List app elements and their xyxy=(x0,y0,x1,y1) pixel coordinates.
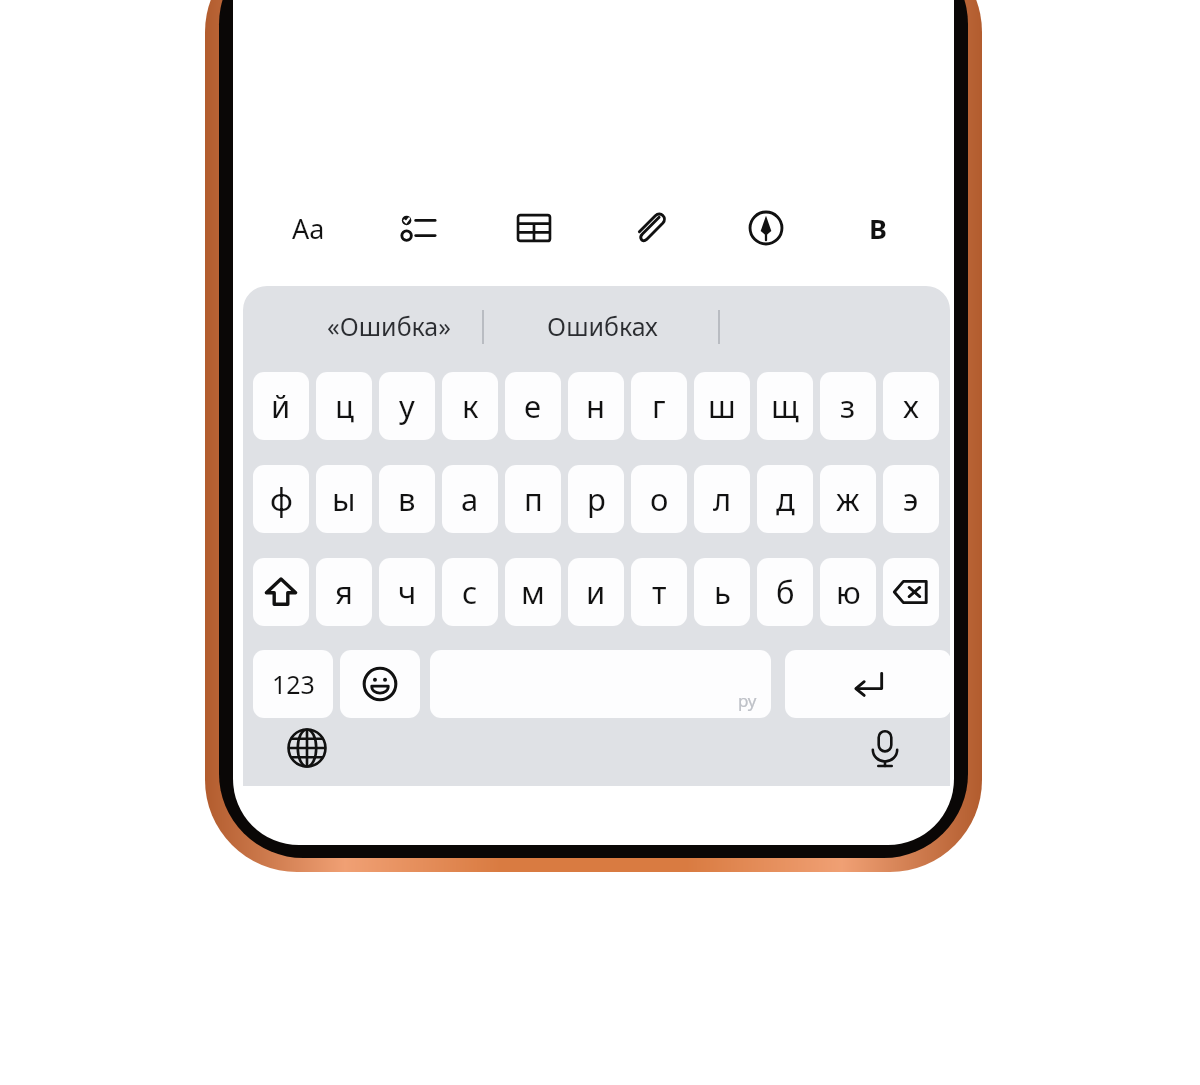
staticText: р xyxy=(587,478,606,520)
button[interactable]: Ошибках xyxy=(487,286,718,366)
button[interactable]: и xyxy=(568,558,624,626)
staticText: г xyxy=(652,385,666,427)
button[interactable]: ж xyxy=(820,465,876,533)
button[interactable]: а xyxy=(442,465,498,533)
button[interactable]: Space xyxy=(430,650,771,718)
staticText: е xyxy=(524,385,542,427)
staticText: ру xyxy=(738,689,757,712)
staticText: B xyxy=(869,210,887,247)
button[interactable]: Enter xyxy=(785,650,950,718)
staticText: м xyxy=(521,571,545,613)
staticText: 123 xyxy=(272,667,315,701)
button[interactable]: е xyxy=(505,372,561,440)
button[interactable]: Emoji xyxy=(340,650,420,718)
staticText: а xyxy=(461,478,479,520)
staticText: и xyxy=(586,571,606,613)
button[interactable]: ю xyxy=(820,558,876,626)
staticText: д xyxy=(776,478,795,520)
button[interactable]: у xyxy=(379,372,435,440)
staticText: ы xyxy=(332,478,356,520)
staticText: я xyxy=(335,571,353,613)
button[interactable]: р xyxy=(568,465,624,533)
button[interactable]: к xyxy=(442,372,498,440)
staticText: ц xyxy=(335,385,354,427)
staticText: л xyxy=(713,478,732,520)
staticText: у xyxy=(399,385,415,427)
staticText: х xyxy=(903,385,919,427)
button[interactable]: г xyxy=(631,372,687,440)
button[interactable]: ш xyxy=(694,372,750,440)
staticText: ь xyxy=(714,571,731,613)
button[interactable]: 123 xyxy=(253,650,333,718)
button[interactable]: с xyxy=(442,558,498,626)
button[interactable]: Bold xyxy=(854,204,902,252)
button[interactable]: ц xyxy=(316,372,372,440)
staticText: «Ошибка» xyxy=(327,309,451,343)
button[interactable]: щ xyxy=(757,372,813,440)
staticText: о xyxy=(650,478,669,520)
button[interactable]: Shift xyxy=(253,558,309,626)
button[interactable]: Attach file xyxy=(626,204,674,252)
staticText: н xyxy=(586,385,606,427)
staticText: й xyxy=(271,385,291,427)
button[interactable]: Checklist xyxy=(394,204,442,252)
button[interactable]: ч xyxy=(379,558,435,626)
staticText: э xyxy=(903,478,919,520)
button[interactable]: б xyxy=(757,558,813,626)
staticText: з xyxy=(840,385,856,427)
button[interactable]: Draw xyxy=(742,204,790,252)
button[interactable]: з xyxy=(820,372,876,440)
button[interactable]: Text format xyxy=(284,204,332,252)
button[interactable]: Change language xyxy=(279,720,335,776)
staticText: б xyxy=(776,571,795,613)
button[interactable]: п xyxy=(505,465,561,533)
button[interactable]: ь xyxy=(694,558,750,626)
button[interactable]: о xyxy=(631,465,687,533)
staticText: Aa xyxy=(292,210,325,247)
button[interactable]: н xyxy=(568,372,624,440)
button[interactable]: ф xyxy=(253,465,309,533)
button[interactable]: в xyxy=(379,465,435,533)
staticText: ш xyxy=(708,385,736,427)
button[interactable]: д xyxy=(757,465,813,533)
staticText: с xyxy=(462,571,478,613)
staticText: п xyxy=(524,478,543,520)
button[interactable]: т xyxy=(631,558,687,626)
staticText: ф xyxy=(270,478,293,520)
button[interactable]: я xyxy=(316,558,372,626)
staticText: Ошибках xyxy=(547,309,658,343)
button[interactable]: Backspace xyxy=(883,558,939,626)
staticText: ч xyxy=(398,571,417,613)
button[interactable]: Table xyxy=(510,204,558,252)
staticText: т xyxy=(652,571,667,613)
staticText: в xyxy=(398,478,416,520)
staticText: ж xyxy=(836,478,860,520)
button[interactable]: ы xyxy=(316,465,372,533)
staticText: к xyxy=(462,385,479,427)
button[interactable]: Voice input xyxy=(857,720,913,776)
button[interactable]: л xyxy=(694,465,750,533)
staticText: щ xyxy=(771,385,799,427)
button[interactable]: э xyxy=(883,465,939,533)
button[interactable]: х xyxy=(883,372,939,440)
button[interactable]: м xyxy=(505,558,561,626)
staticText: ю xyxy=(836,571,861,613)
button[interactable]: «Ошибка» xyxy=(291,286,487,366)
button[interactable]: й xyxy=(253,372,309,440)
